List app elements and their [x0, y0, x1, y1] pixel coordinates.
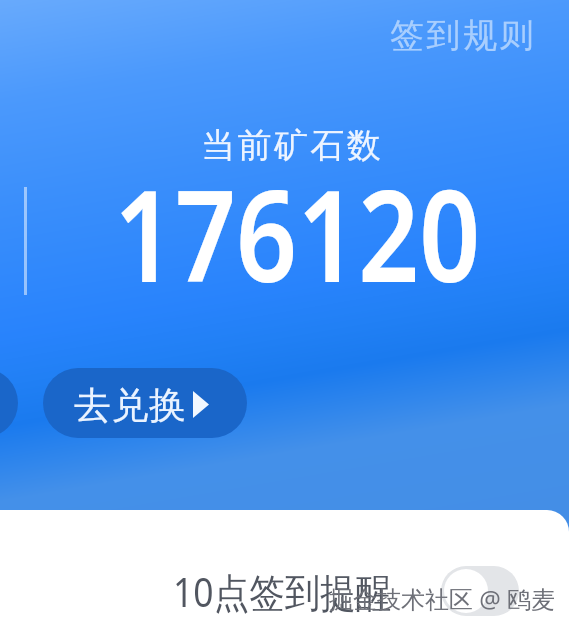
staticText: 去兑换	[74, 382, 187, 429]
button[interactable]: 去兑换	[43, 368, 247, 438]
staticText: 当前矿石数	[200, 124, 382, 167]
staticText: 掘金技术社区 @ 鸥麦	[329, 582, 556, 615]
staticText: 10点签到提醒	[173, 564, 391, 619]
staticText: 签到规则	[390, 14, 537, 57]
staticText: 176120	[114, 147, 481, 319]
button[interactable]: 签到规则	[380, 4, 547, 67]
button[interactable]: Sign-in reminder toggle	[441, 566, 519, 616]
button[interactable]	[0, 368, 18, 438]
button[interactable]: 10点签到提醒	[0, 557, 569, 625]
